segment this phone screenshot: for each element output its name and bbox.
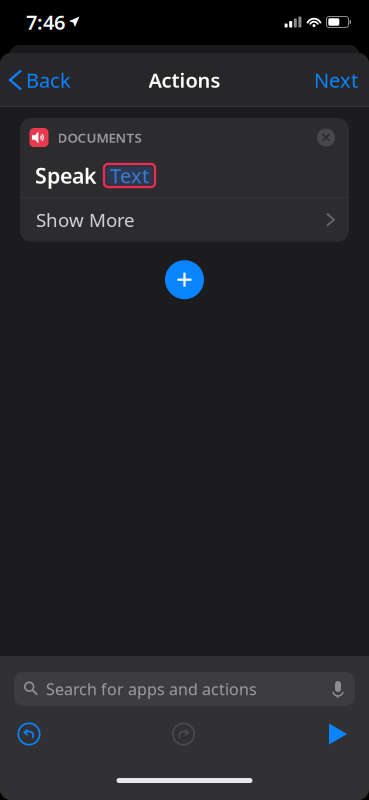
staticText: Actions [148, 67, 220, 93]
staticText: Show More [36, 207, 135, 232]
button[interactable]: Show More [20, 198, 349, 242]
staticText: Speak [35, 161, 97, 190]
button[interactable]: Back [0, 58, 81, 102]
button[interactable]: Next [300, 58, 369, 102]
staticText: DOCUMENTS [57, 129, 141, 146]
button[interactable]: Search for apps and actions [14, 672, 355, 706]
button[interactable]: Play [314, 714, 362, 754]
staticText: Text [110, 162, 149, 189]
button[interactable]: Text [97, 164, 155, 187]
staticText: 7:46 [26, 9, 65, 35]
staticText: Search for apps and actions [46, 678, 257, 700]
button[interactable]: Remove action [317, 128, 335, 146]
button[interactable]: Add action [160, 256, 208, 304]
staticText: Back [26, 67, 71, 93]
button[interactable]: Redo [159, 714, 207, 754]
staticText: Next [314, 67, 358, 93]
button[interactable]: Undo [5, 714, 53, 754]
